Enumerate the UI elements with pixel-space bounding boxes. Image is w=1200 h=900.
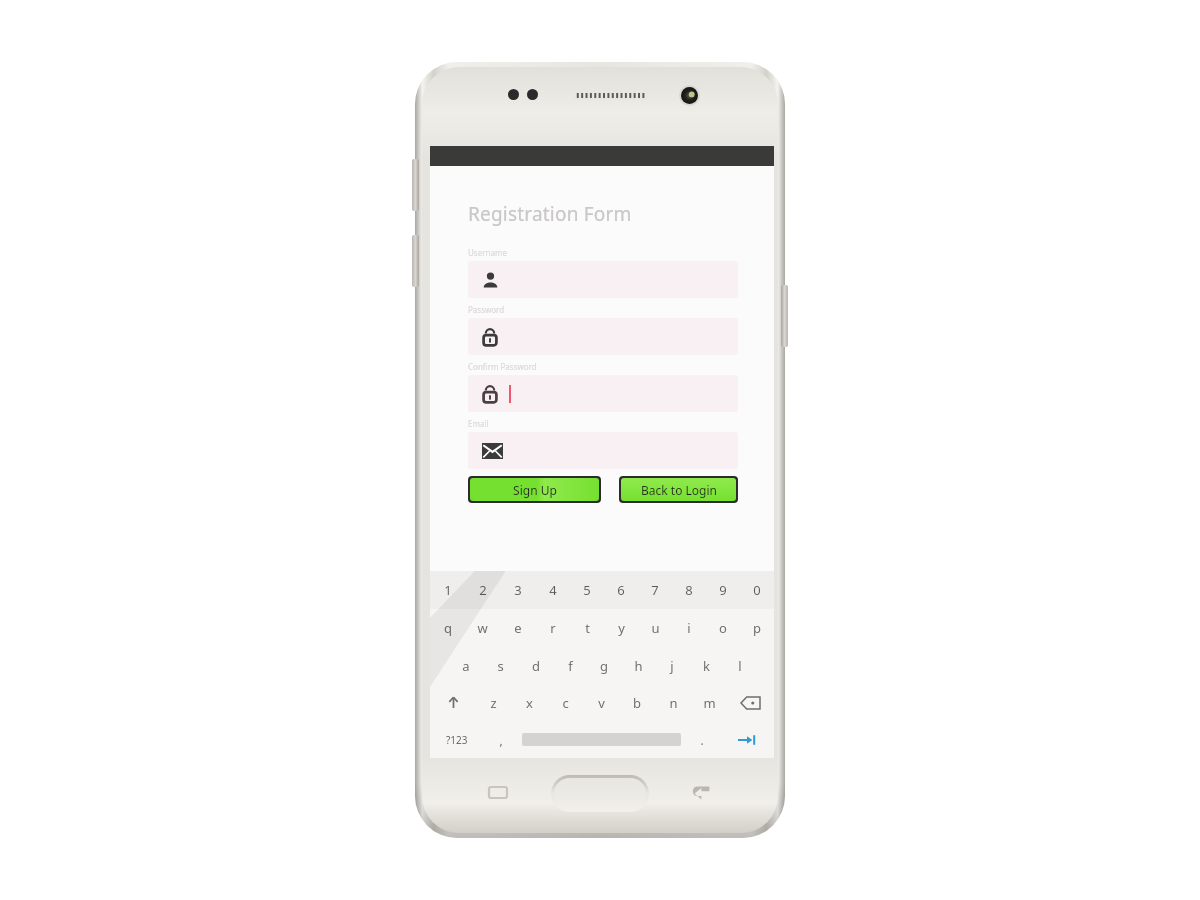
button[interactable]: a: [448, 647, 483, 684]
button[interactable]: Sign Up: [470, 478, 599, 501]
staticText: b: [633, 694, 641, 712]
staticText: a: [462, 657, 470, 675]
staticText: u: [651, 619, 660, 637]
staticText: 9: [719, 581, 727, 599]
button[interactable]: .: [684, 721, 720, 758]
button[interactable]: 8: [672, 571, 706, 609]
button[interactable]: Back to Login: [621, 478, 736, 501]
button[interactable]: h: [621, 647, 655, 684]
button[interactable]: 4: [535, 571, 570, 609]
staticText: t: [585, 619, 590, 637]
staticText: Sign Up: [513, 482, 557, 498]
button[interactable]: 0: [740, 571, 774, 609]
staticText: o: [719, 619, 727, 637]
button[interactable]: 2: [465, 571, 500, 609]
staticText: 1: [444, 581, 452, 599]
staticText: 5: [583, 581, 591, 599]
button[interactable]: Next field: [720, 721, 774, 758]
other: Volume up: [412, 159, 419, 211]
button[interactable]: Home: [551, 775, 649, 812]
staticText: 6: [617, 581, 625, 599]
button[interactable]: 1: [430, 571, 465, 609]
button[interactable]: s: [483, 647, 518, 684]
staticText: 0: [753, 581, 761, 599]
button[interactable]: p: [740, 609, 774, 647]
button[interactable]: v: [583, 684, 619, 721]
button[interactable]: Shift: [430, 684, 476, 721]
button[interactable]: Backspace: [727, 684, 774, 721]
staticText: Confirm Password: [468, 361, 537, 372]
button[interactable]: y: [604, 609, 638, 647]
button[interactable]: c: [547, 684, 583, 721]
button[interactable]: [468, 261, 738, 298]
button[interactable]: n: [655, 684, 691, 721]
button[interactable]: ,: [483, 721, 519, 758]
staticText: n: [669, 694, 678, 712]
button[interactable]: f: [553, 647, 587, 684]
button[interactable]: d: [518, 647, 553, 684]
button[interactable]: Recents: [487, 784, 509, 800]
staticText: r: [550, 619, 556, 637]
button[interactable]: [468, 318, 738, 355]
staticText: q: [444, 619, 452, 637]
button[interactable]: 7: [638, 571, 672, 609]
button[interactable]: k: [689, 647, 723, 684]
staticText: 2: [479, 581, 487, 599]
staticText: d: [532, 657, 540, 675]
button[interactable]: 3: [500, 571, 535, 609]
button[interactable]: x: [511, 684, 547, 721]
staticText: ?123: [446, 733, 468, 747]
other: Power: [781, 285, 788, 347]
staticText: 3: [514, 581, 522, 599]
staticText: Email: [468, 418, 489, 429]
button[interactable]: g: [587, 647, 621, 684]
button[interactable]: 6: [604, 571, 638, 609]
staticText: k: [703, 657, 710, 675]
staticText: c: [562, 694, 569, 712]
button[interactable]: i: [672, 609, 706, 647]
button[interactable]: u: [638, 609, 672, 647]
button[interactable]: b: [619, 684, 655, 721]
staticText: Username: [468, 247, 507, 258]
staticText: l: [738, 657, 742, 675]
staticText: 8: [685, 581, 693, 599]
staticText: w: [477, 619, 488, 637]
staticText: j: [670, 657, 674, 675]
staticText: ,: [499, 732, 503, 748]
other: Volume down: [412, 235, 419, 287]
button[interactable]: j: [655, 647, 689, 684]
staticText: x: [526, 694, 533, 712]
staticText: Password: [468, 304, 505, 315]
button[interactable]: 5: [570, 571, 604, 609]
staticText: 4: [549, 581, 557, 599]
staticText: 7: [651, 581, 659, 599]
staticText: i: [687, 619, 691, 637]
button[interactable]: w: [465, 609, 500, 647]
button[interactable]: [468, 375, 738, 412]
staticText: p: [753, 619, 761, 637]
button[interactable]: t: [570, 609, 604, 647]
staticText: m: [703, 694, 716, 712]
button[interactable]: [468, 432, 738, 469]
button[interactable]: q: [430, 609, 465, 647]
button[interactable]: e: [500, 609, 535, 647]
staticText: s: [497, 657, 504, 675]
staticText: .: [700, 732, 704, 748]
staticText: f: [568, 657, 573, 675]
button[interactable]: Back: [689, 782, 713, 802]
staticText: z: [490, 694, 497, 712]
button[interactable]: l: [723, 647, 757, 684]
staticText: Registration Form: [468, 201, 632, 227]
staticText: g: [600, 657, 608, 675]
staticText: e: [514, 619, 522, 637]
button[interactable]: o: [706, 609, 740, 647]
button[interactable]: ?123: [430, 721, 483, 758]
staticText: Back to Login: [641, 482, 717, 498]
button[interactable]: z: [476, 684, 511, 721]
button[interactable]: 9: [706, 571, 740, 609]
staticText: y: [618, 619, 625, 637]
staticText: v: [598, 694, 605, 712]
button[interactable]: m: [691, 684, 727, 721]
button[interactable]: r: [535, 609, 570, 647]
